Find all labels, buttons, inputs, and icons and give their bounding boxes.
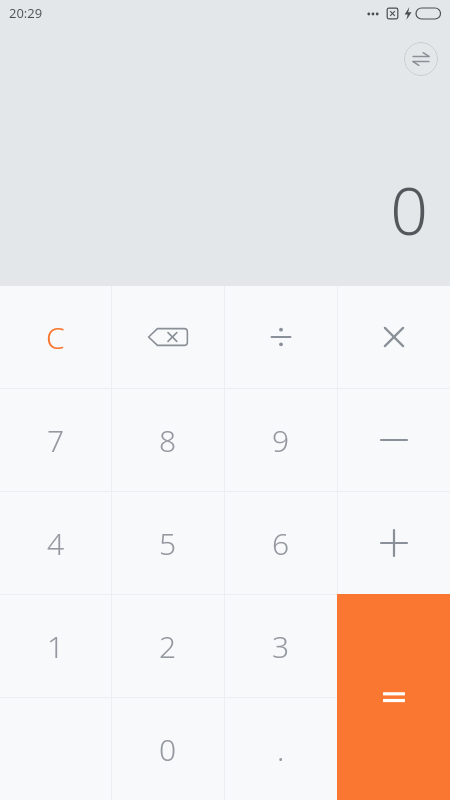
staticText: 0 <box>390 164 428 254</box>
staticText: 6 <box>272 523 290 564</box>
button[interactable]: 3 <box>225 595 337 697</box>
button[interactable]: Plus <box>338 492 450 594</box>
other: Multiply <box>382 325 406 349</box>
staticText: 3 <box>272 626 290 667</box>
staticText: 2 <box>159 626 177 667</box>
other: Divide <box>268 324 294 350</box>
staticText: 7 <box>47 420 65 461</box>
button[interactable]: 6 <box>225 492 337 594</box>
staticText: 8 <box>159 420 177 461</box>
button[interactable]: 0 <box>112 698 224 800</box>
other: Plus <box>381 530 407 556</box>
button[interactable]: 2 <box>112 595 224 697</box>
button[interactable]: 9 <box>225 389 337 491</box>
button[interactable]: Divide <box>225 286 337 388</box>
staticText: . <box>277 729 285 770</box>
button[interactable]: 4 <box>0 492 111 594</box>
staticText: 9 <box>272 420 290 461</box>
button[interactable]: 8 <box>112 389 224 491</box>
button[interactable]: Unit converter <box>404 42 438 76</box>
staticText: 4 <box>47 523 65 564</box>
staticText: 0 <box>159 729 177 770</box>
button[interactable]: Multiply <box>338 286 450 388</box>
button[interactable]: Equals <box>337 594 450 800</box>
staticText: C <box>46 317 65 358</box>
button[interactable]: C <box>0 286 111 388</box>
button[interactable]: 7 <box>0 389 111 491</box>
staticText: 20:29 <box>9 4 43 22</box>
other: Minus <box>381 427 407 453</box>
button[interactable]: Minus <box>338 389 450 491</box>
other: Backspace <box>146 322 190 352</box>
staticText: 1 <box>47 626 65 667</box>
button[interactable]: 1 <box>0 595 111 697</box>
staticText: 5 <box>159 523 177 564</box>
button[interactable]: Backspace <box>112 286 224 388</box>
button[interactable]: 5 <box>112 492 224 594</box>
